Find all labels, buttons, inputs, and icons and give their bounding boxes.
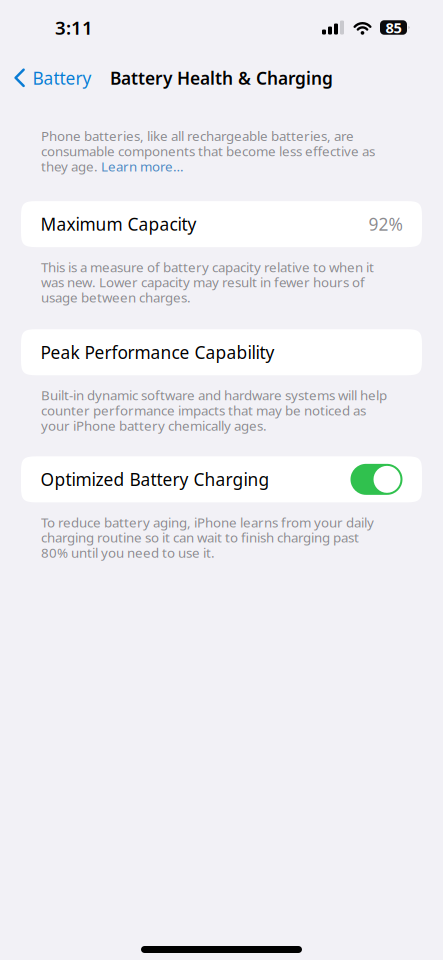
staticText: 3:11 [55, 15, 93, 40]
staticText: Optimized Battery Charging [40, 468, 269, 491]
button[interactable]: Peak Performance Capability [0, 329, 443, 375]
staticText: Phone batteries, like all rechargeable b… [41, 127, 375, 175]
button[interactable]: Maximum Capacity [0, 201, 443, 247]
staticText: Built-in dynamic software and hardware s… [41, 386, 387, 434]
staticText: Battery Health & Charging [110, 66, 333, 89]
staticText: Peak Performance Capability [40, 341, 274, 364]
staticText: Maximum Capacity [40, 213, 196, 236]
button[interactable]: Back to Battery [0, 57, 101, 99]
staticText: 85 [385, 18, 401, 37]
staticText: To reduce battery aging, iPhone learns f… [41, 513, 374, 561]
staticText: 92% [368, 213, 402, 236]
staticText: This is a measure of battery capacity re… [41, 258, 374, 306]
button[interactable]: Optimized Battery Charging [350, 464, 402, 495]
staticText: Battery [32, 66, 91, 89]
